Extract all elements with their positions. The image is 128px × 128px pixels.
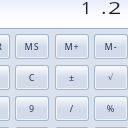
button[interactable]: 8: [0, 96, 10, 121]
button[interactable]: 1: [0, 0, 128, 28]
button[interactable]: MS: [15, 34, 49, 59]
staticText: ±: [69, 72, 75, 83]
button[interactable]: [0, 127, 10, 128]
staticText: 1: [81, 0, 92, 19]
button[interactable]: M+: [55, 34, 89, 59]
button[interactable]: 9: [15, 96, 49, 121]
staticText: .: [101, 0, 107, 19]
button[interactable]: %: [94, 96, 128, 121]
staticText: /: [70, 103, 74, 114]
staticText: CE: [0, 72, 2, 83]
button[interactable]: ±: [55, 65, 89, 90]
staticText: 2: [108, 0, 122, 19]
button[interactable]: C: [15, 65, 49, 90]
button[interactable]: M-: [94, 34, 128, 59]
button[interactable]: √: [94, 65, 128, 90]
staticText: MR: [0, 41, 3, 52]
button[interactable]: [94, 127, 128, 128]
button[interactable]: CE: [0, 65, 10, 90]
staticText: M-: [104, 41, 118, 52]
staticText: MS: [24, 41, 40, 52]
staticText: M+: [64, 41, 80, 52]
staticText: √: [108, 73, 114, 82]
button[interactable]: MR: [0, 34, 10, 59]
button[interactable]: [15, 127, 49, 128]
staticText: C: [29, 72, 35, 83]
button[interactable]: /: [55, 96, 89, 121]
staticText: %: [106, 103, 115, 114]
button[interactable]: [55, 127, 89, 128]
staticText: 9: [29, 103, 35, 114]
